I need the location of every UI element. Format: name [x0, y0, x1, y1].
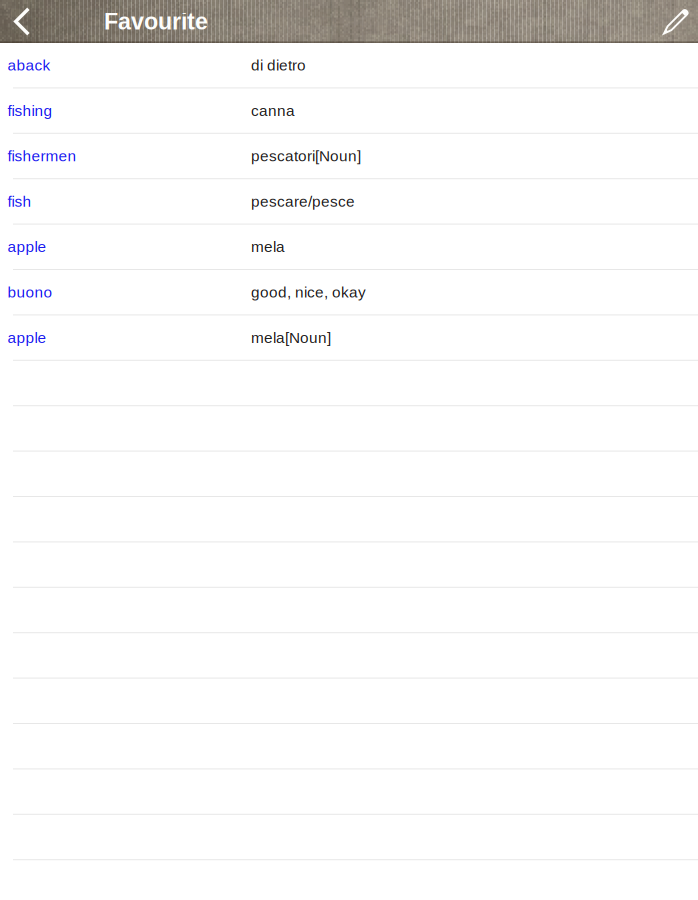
button[interactable] [0, 542, 698, 588]
button[interactable]: apple [0, 315, 698, 361]
staticText: mela[Noun] [251, 329, 331, 346]
staticText: apple [7, 329, 46, 346]
button[interactable]: fishing [0, 88, 698, 134]
staticText: aback [7, 57, 50, 74]
staticText: fishermen [7, 147, 76, 164]
staticText: Favourite [104, 8, 208, 35]
staticText: mela [251, 238, 285, 255]
button[interactable]: buono [0, 270, 698, 315]
button[interactable] [0, 769, 698, 815]
button[interactable]: Back [0, 0, 44, 43]
staticText: fish [7, 193, 31, 210]
button[interactable] [0, 679, 698, 724]
button[interactable]: aback [0, 43, 698, 88]
staticText: pescatori[Noun] [251, 147, 361, 164]
staticText: good, nice, okay [251, 284, 366, 301]
button[interactable]: fishermen [0, 134, 698, 179]
staticText: di dietro [251, 57, 306, 74]
staticText: pescare/pesce [251, 193, 355, 210]
button[interactable]: apple [0, 225, 698, 270]
staticText: apple [7, 238, 46, 255]
staticText: canna [251, 102, 295, 119]
staticText: fishing [7, 102, 52, 119]
staticText: buono [7, 284, 52, 301]
button[interactable]: Edit [656, 0, 698, 43]
button[interactable]: fish [0, 179, 698, 225]
button[interactable] [0, 452, 698, 497]
